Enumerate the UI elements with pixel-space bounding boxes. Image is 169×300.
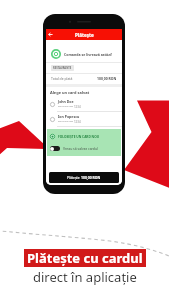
staticText: RESTAURANTE [53,66,72,70]
staticText: Ion Popescu [58,114,80,119]
staticText: Total de plată [51,76,73,81]
staticText: Alege un card salvat [50,90,90,95]
staticText: direct în aplicație [33,268,137,286]
staticText: Plătește [67,175,81,180]
staticText: John Doe [58,99,74,104]
button[interactable]: Plătește [49,172,119,183]
staticText: Vreau să salvez cardul [63,146,98,151]
staticText: 100,00 RON [81,175,101,180]
button[interactable]: Ion Popescu [46,112,122,126]
button[interactable]: Back [48,32,53,37]
staticText: Plătește cu cardul [27,249,143,267]
staticText: Plătește [75,32,94,38]
button[interactable]: FOLOSEȘTE UN CARD NOU [50,134,118,139]
button[interactable]: John Doe [46,97,122,111]
staticText: •••• •••• •••• 1234 [58,120,81,124]
staticText: •••• •••• •••• 1234 [58,105,81,109]
staticText: FOLOSEȘTE UN CARD NOU [58,135,100,139]
button[interactable]: Vreau să salvez cardul [50,146,118,151]
staticText: Comanda se livrează astăzi! [64,52,112,57]
button[interactable]: Plătește [46,29,122,40]
staticText: 100,00 RON [97,76,117,81]
